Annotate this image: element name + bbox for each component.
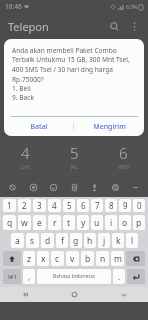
button[interactable]: a [11, 233, 24, 248]
button[interactable]: Search [104, 16, 124, 36]
button[interactable]: l [126, 233, 138, 248]
button[interactable]: 2 [18, 199, 31, 212]
staticText: j [103, 235, 106, 247]
button[interactable]: 3 [33, 199, 46, 212]
button[interactable]: Voice typing [4, 178, 21, 197]
staticText: 6 [119, 143, 128, 163]
staticText: w [21, 217, 28, 229]
button[interactable]: e [33, 215, 46, 230]
staticText: !#1 [8, 273, 17, 281]
button[interactable]: v [66, 251, 79, 266]
staticText: 63% [126, 3, 138, 11]
button[interactable]: 9 [119, 199, 131, 212]
button[interactable]: 5 [63, 199, 75, 212]
button[interactable]: z [23, 251, 35, 266]
button[interactable]: Backspace [126, 251, 145, 266]
button[interactable]: n [96, 251, 109, 266]
staticText: e [37, 217, 42, 229]
button[interactable]: o [119, 215, 131, 230]
button[interactable]: x [37, 251, 49, 266]
staticText: 1. Beli [12, 84, 31, 93]
button[interactable]: 4 [0, 136, 50, 176]
staticText: Bahasa Indonesia [53, 273, 95, 280]
staticText: 4 [21, 143, 30, 163]
button[interactable]: f [56, 233, 68, 248]
button[interactable]: Stickers [45, 178, 62, 197]
button[interactable]: . [113, 269, 125, 284]
button[interactable]: 8 [105, 199, 117, 212]
button[interactable]: b [81, 251, 94, 266]
staticText: JKL [71, 164, 78, 170]
staticText: i [110, 217, 113, 229]
staticText: y [81, 217, 86, 229]
staticText: 7 [95, 200, 100, 211]
button[interactable]: Enter [127, 269, 145, 284]
staticText: 5 [70, 143, 79, 163]
staticText: l [131, 235, 134, 247]
button[interactable]: y [77, 215, 89, 230]
button[interactable]: Mengirim [74, 117, 144, 136]
staticText: k [116, 235, 121, 247]
button[interactable]: Collapse [127, 178, 144, 197]
staticText: s [30, 235, 35, 247]
staticText: GHI [21, 164, 30, 170]
button[interactable]: Home [50, 287, 99, 302]
button[interactable]: u [91, 215, 103, 230]
button[interactable]: Emoji [25, 178, 42, 197]
staticText: d [45, 235, 51, 247]
button[interactable]: More options [124, 16, 144, 36]
staticText: n [100, 253, 106, 265]
button[interactable]: Shift [3, 251, 21, 266]
staticText: 5 [67, 200, 72, 211]
button[interactable]: 6 [99, 136, 148, 176]
staticText: 9. Back [12, 93, 34, 102]
button[interactable]: , [23, 269, 35, 284]
button[interactable]: Clipboard [66, 178, 83, 197]
button[interactable]: w [18, 215, 31, 230]
staticText: z [27, 253, 31, 265]
staticText: p [136, 217, 142, 229]
button[interactable]: k [112, 233, 124, 248]
staticText: 0 [137, 200, 142, 211]
staticText: v [70, 253, 75, 265]
staticText: Batal [30, 122, 48, 132]
staticText: t [67, 217, 71, 229]
staticText: 6 [81, 200, 86, 211]
button[interactable]: q [3, 215, 16, 230]
staticText: 1 [7, 200, 12, 211]
button[interactable]: Back [99, 287, 148, 302]
staticText: q [7, 217, 13, 229]
staticText: a [15, 235, 20, 247]
button[interactable]: Bahasa Indonesia [37, 269, 111, 284]
button[interactable]: 0 [133, 199, 145, 212]
button[interactable]: i [105, 215, 117, 230]
button[interactable]: 4 [48, 199, 61, 212]
button[interactable]: 7 [91, 199, 103, 212]
button[interactable]: Recents [0, 287, 50, 302]
button[interactable]: p [133, 215, 145, 230]
button[interactable]: m [111, 251, 124, 266]
staticText: 8 [109, 200, 114, 211]
staticText: 18:46 [5, 2, 22, 11]
staticText: r [53, 217, 57, 229]
button[interactable]: d [41, 233, 54, 248]
staticText: c [55, 253, 60, 265]
button[interactable]: 5 [50, 136, 99, 176]
button[interactable]: h [84, 233, 96, 248]
staticText: u [94, 217, 100, 229]
button[interactable]: r [48, 215, 61, 230]
button[interactable]: Microphone [86, 178, 103, 197]
button[interactable]: c [51, 251, 64, 266]
button[interactable]: 1 [3, 199, 16, 212]
button[interactable]: s [26, 233, 39, 248]
button[interactable]: g [70, 233, 82, 248]
staticText: 2 [22, 200, 27, 211]
button[interactable]: j [98, 233, 110, 248]
staticText: o [122, 217, 128, 229]
button[interactable]: 6 [77, 199, 89, 212]
button[interactable]: Batal [4, 117, 73, 136]
button[interactable]: Keyboard settings [107, 178, 124, 197]
button[interactable]: t [63, 215, 75, 230]
staticText: f [61, 235, 64, 247]
button[interactable]: !#1 [3, 269, 21, 284]
